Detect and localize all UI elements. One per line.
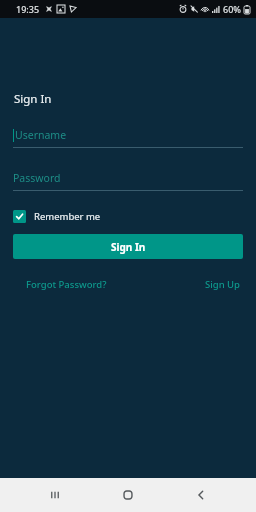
button[interactable]: Remember me: [13, 210, 101, 223]
staticText: Sign Up: [205, 278, 241, 291]
staticText: Sign In: [14, 91, 52, 107]
staticText: Forgot Password?: [26, 278, 107, 291]
button[interactable]: Sign Up: [203, 276, 243, 293]
button[interactable]: Home: [110, 478, 146, 512]
staticText: Password: [13, 171, 61, 185]
staticText: Remember me: [34, 210, 101, 223]
staticText: 19:35: [16, 3, 40, 15]
button[interactable]: Forgot Password?: [13, 276, 120, 293]
button[interactable]: Recent apps: [37, 478, 73, 512]
button[interactable]: Sign In: [13, 234, 243, 259]
staticText: Username: [15, 128, 67, 142]
button[interactable]: Password: [13, 171, 243, 191]
button[interactable]: Back: [183, 478, 219, 512]
staticText: 60%: [223, 3, 241, 15]
button[interactable]: Username: [13, 128, 243, 148]
staticText: Sign In: [111, 240, 146, 254]
